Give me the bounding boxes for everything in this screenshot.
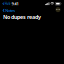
staticText: Hub: [5, 2, 11, 5]
button[interactable]: Hub: [2, 2, 11, 5]
button[interactable]: Account: [55, 7, 64, 14]
staticText: 9:41: [12, 1, 19, 6]
staticText: Notes: [5, 8, 15, 13]
button[interactable]: Notes: [0, 7, 15, 14]
staticText: No dupes ready: [3, 13, 41, 20]
